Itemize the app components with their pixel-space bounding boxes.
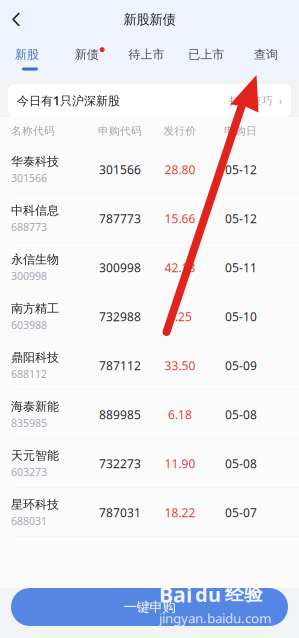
staticText: 603273 <box>11 465 47 479</box>
staticText: 名称代码 <box>11 124 55 137</box>
staticText: 688031 <box>11 514 47 528</box>
staticText: 新股新债 <box>123 11 175 28</box>
staticText: 05-12 <box>225 210 257 226</box>
button[interactable]: 星环科技 <box>0 488 299 537</box>
staticText: 05-09 <box>225 357 257 373</box>
staticText: 300998 <box>99 259 141 275</box>
staticText: 05-10 <box>225 308 257 324</box>
staticText: 华泰科技 <box>11 154 59 169</box>
staticText: 05-11 <box>225 259 257 275</box>
staticText: 42.18 <box>164 259 195 275</box>
staticText: 732273 <box>99 455 141 471</box>
staticText: 05-08 <box>225 455 257 471</box>
staticText: 星环科技 <box>11 497 59 512</box>
button[interactable]: 华泰科技 <box>0 145 299 194</box>
staticText: Bai <box>159 580 192 608</box>
button[interactable]: 今日有1只沪深新股 <box>8 84 291 117</box>
staticText: 经验 <box>225 583 263 606</box>
staticText: 688773 <box>11 220 47 234</box>
button[interactable]: 查询 <box>239 41 299 74</box>
staticText: 18.22 <box>164 504 195 520</box>
staticText: 新股 <box>15 47 39 62</box>
staticText: 天元智能 <box>11 448 59 463</box>
staticText: 301566 <box>99 161 141 177</box>
staticText: 申购代码 <box>98 124 142 137</box>
staticText: 889985 <box>99 406 141 422</box>
button[interactable]: 鼎阳科技 <box>0 341 299 390</box>
button[interactable]: 已上市 <box>179 41 239 74</box>
staticText: 835985 <box>11 416 47 430</box>
staticText: 今日有1只沪深新股 <box>17 92 120 108</box>
staticText: 05-07 <box>225 504 257 520</box>
staticText: 787112 <box>99 357 141 373</box>
staticText: 732988 <box>99 308 141 324</box>
staticText: 鼎阳科技 <box>11 350 59 365</box>
staticText: 打新技巧 › <box>229 93 282 108</box>
staticText: jingyan.baidu.com <box>159 609 271 627</box>
staticText: du <box>195 581 221 607</box>
button[interactable]: Back <box>0 0 34 39</box>
staticText: 待上市 <box>128 47 164 62</box>
staticText: 中科信息 <box>11 203 59 218</box>
staticText: 新债 <box>75 47 99 62</box>
button[interactable]: 永信生物 <box>0 243 299 292</box>
staticText: 6.18 <box>168 406 192 422</box>
button[interactable]: 南方精工 <box>0 292 299 341</box>
staticText: 787031 <box>99 504 141 520</box>
button[interactable]: 新债 <box>60 41 120 74</box>
staticText: 9.25 <box>168 308 192 324</box>
staticText: 603988 <box>11 318 47 332</box>
button[interactable]: 新股 <box>0 41 60 74</box>
button[interactable]: 待上市 <box>120 41 179 74</box>
staticText: 永信生物 <box>11 252 59 267</box>
button[interactable]: 海泰新能 <box>0 390 299 439</box>
staticText: 发行价 <box>163 124 196 137</box>
staticText: 已上市 <box>188 47 224 62</box>
button[interactable]: 中科信息 <box>0 194 299 243</box>
staticText: 688112 <box>11 367 47 381</box>
staticText: 南方精工 <box>11 301 59 316</box>
staticText: 查询 <box>254 47 278 62</box>
staticText: 301566 <box>11 171 47 185</box>
staticText: 05-08 <box>225 406 257 422</box>
staticText: 申购日 <box>224 124 257 137</box>
staticText: 11.90 <box>164 455 195 471</box>
staticText: 海泰新能 <box>11 399 59 414</box>
staticText: 787773 <box>99 210 141 226</box>
staticText: 05-12 <box>225 161 257 177</box>
button[interactable]: 一键申购 <box>11 588 288 626</box>
button[interactable]: 天元智能 <box>0 439 299 488</box>
staticText: 33.50 <box>164 357 195 373</box>
staticText: 15.66 <box>164 210 195 226</box>
staticText: 28.80 <box>164 161 195 177</box>
staticText: 一键申购 <box>123 599 175 615</box>
staticText: 300998 <box>11 269 47 283</box>
